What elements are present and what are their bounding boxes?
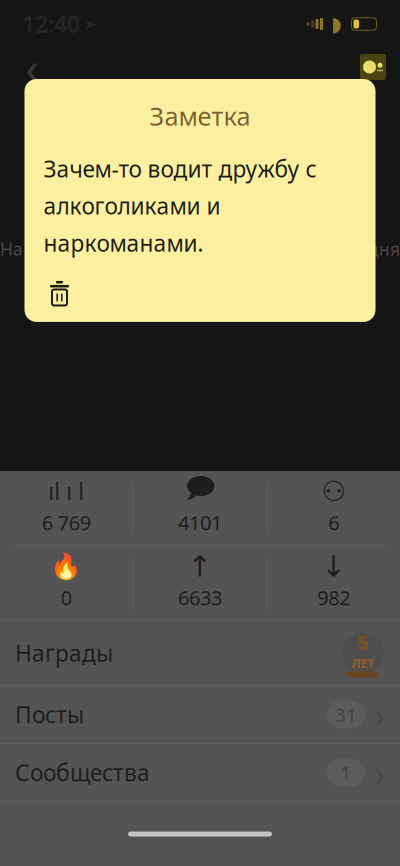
button[interactable]: ПОДПИСАТЬСЯ <box>45 281 195 318</box>
staticText: ЛЕТ <box>351 655 374 671</box>
staticText: 6 769 <box>42 509 91 536</box>
staticText: ⚇ <box>321 475 346 507</box>
button[interactable]: ⚇ <box>267 480 400 536</box>
staticText: 🗩 <box>184 468 215 514</box>
staticText: 🔥 <box>50 552 82 581</box>
staticText: ıl ı l <box>48 476 84 506</box>
staticText: ◗ <box>331 13 342 35</box>
staticText: 1 <box>340 760 351 785</box>
staticText: Зачем-то водит дружбу с алкоголиками и н… <box>43 154 316 258</box>
staticText: ↓ <box>321 550 346 583</box>
staticText: 5 <box>357 629 369 655</box>
staticText: 982 <box>317 584 350 611</box>
staticText: 6633 <box>178 584 222 611</box>
staticText: Заметка <box>149 99 250 133</box>
button[interactable]: Profile avatar <box>360 54 386 80</box>
button[interactable]: ↓ <box>267 555 400 611</box>
staticText: 6 <box>328 509 339 536</box>
button[interactable]: Back <box>12 47 52 87</box>
button[interactable]: Сообщества <box>0 744 400 801</box>
staticText: На Пикабу уже 6 лет 5 месяцев 3 недели 4… <box>0 237 400 260</box>
button[interactable]: Посты <box>0 686 400 743</box>
staticText: ➤ <box>84 16 96 32</box>
staticText: › <box>374 691 385 737</box>
button[interactable]: ıl ı l <box>0 480 133 536</box>
staticText: › <box>374 749 385 795</box>
staticText: 4101 <box>178 509 222 536</box>
staticText: Сообщества <box>15 757 150 787</box>
staticText: Посты <box>15 699 84 729</box>
staticText: 12:40 <box>22 9 80 39</box>
button[interactable]: 🗩 <box>134 480 266 536</box>
staticText: 31 <box>335 702 357 727</box>
button[interactable]: 🔥 <box>0 555 133 611</box>
staticText: Награды <box>15 638 113 668</box>
staticText: ПОДПИСАТЬСЯ <box>54 288 186 311</box>
button[interactable]: ↑ <box>134 555 266 611</box>
button[interactable]: Награды <box>0 621 400 685</box>
staticText: ‹ <box>25 37 39 97</box>
staticText: ↑ <box>187 550 212 583</box>
staticText: 0 <box>61 584 72 611</box>
button[interactable]: Delete note <box>43 274 75 306</box>
